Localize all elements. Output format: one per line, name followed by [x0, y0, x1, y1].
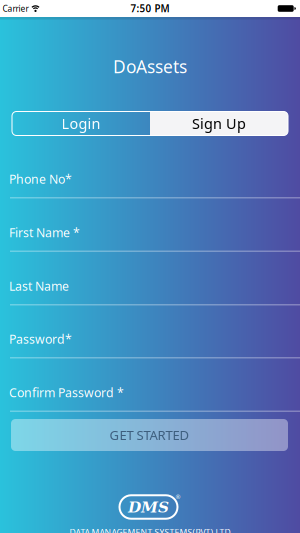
button[interactable]: First Name *	[0, 223, 300, 252]
button[interactable]: Phone No*	[0, 170, 300, 198]
staticText: Confirm Password *	[9, 384, 124, 401]
staticText: DoAssets	[113, 55, 187, 78]
button[interactable]: Confirm Password *	[0, 383, 300, 412]
staticText: GET STARTED	[109, 426, 189, 444]
staticText: 7:50 PM	[130, 2, 169, 15]
staticText: Sign Up	[192, 114, 246, 133]
staticText: Password*	[9, 331, 72, 347]
staticText: First Name *	[9, 224, 80, 241]
staticText: DMS	[128, 498, 169, 516]
button[interactable]: Password*	[0, 330, 300, 358]
staticText: Phone No*	[9, 171, 72, 187]
button[interactable]: Login	[12, 111, 150, 135]
button[interactable]: Sign Up	[150, 111, 288, 135]
staticText: DATA MANAGEMENT SYSTEMS(PVT) LTD	[69, 526, 230, 533]
button[interactable]: Last Name	[0, 277, 300, 305]
staticText: Carrier	[2, 3, 28, 14]
button[interactable]: GET STARTED	[11, 419, 288, 451]
staticText: ®	[175, 493, 180, 501]
staticText: Last Name	[9, 278, 69, 294]
staticText: Login	[61, 114, 100, 133]
